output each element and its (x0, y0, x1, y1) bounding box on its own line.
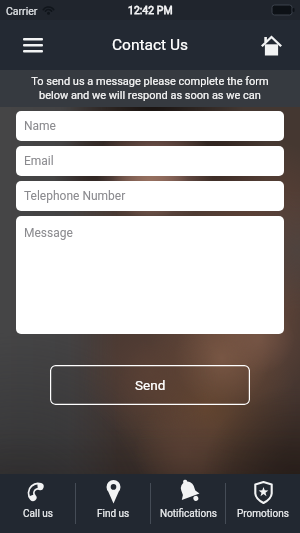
staticText: Notifications (160, 508, 217, 520)
staticText: Carrier (6, 5, 38, 17)
staticText: To send us a message please complete the… (0, 75, 300, 102)
staticText: Message (24, 226, 73, 240)
button[interactable] (254, 28, 288, 62)
button[interactable]: Find us (76, 474, 150, 533)
button[interactable]: Call us (0, 474, 75, 533)
button[interactable]: Promotions (226, 474, 300, 533)
staticText: Name (24, 119, 56, 133)
staticText: Send (135, 377, 166, 393)
button[interactable]: Send (50, 365, 250, 405)
staticText: Contact Us (112, 36, 189, 54)
button[interactable] (14, 26, 52, 64)
button[interactable]: Notifications (151, 474, 225, 533)
staticText: Telephone Number (24, 189, 126, 203)
staticText: Find us (97, 508, 130, 520)
staticText: Call us (23, 508, 53, 520)
staticText: Promotions (237, 508, 289, 520)
staticText: 12:42 PM (128, 4, 173, 16)
button[interactable]: Name (16, 111, 284, 141)
staticText: Email (24, 154, 54, 168)
button[interactable]: Telephone Number (16, 181, 284, 211)
button[interactable]: Message (16, 216, 284, 334)
button[interactable]: Email (16, 146, 284, 176)
